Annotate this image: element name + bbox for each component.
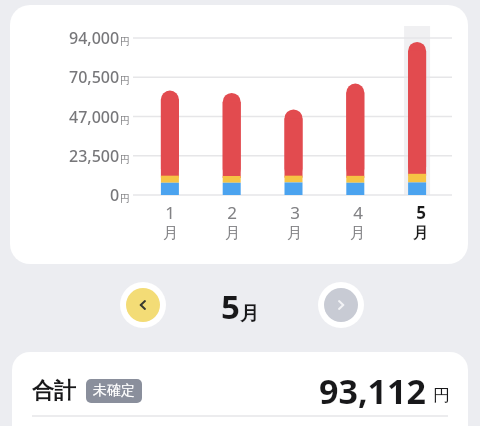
staticText: 月 — [287, 224, 302, 243]
staticText: 月 — [350, 224, 365, 243]
staticText: 0 — [110, 184, 120, 206]
staticText: 2 — [227, 201, 237, 224]
staticText: 1 — [165, 201, 175, 224]
staticText: 月 — [413, 224, 428, 243]
button[interactable]: 合計 — [12, 352, 468, 426]
staticText: 未確定 — [93, 382, 135, 400]
staticText: 70,500 — [69, 66, 120, 88]
staticText: 47,000 — [69, 106, 120, 128]
staticText: 5 — [416, 201, 426, 224]
staticText: 円 — [120, 153, 130, 166]
staticText: 合計 — [32, 377, 76, 405]
staticText: 円 — [120, 74, 130, 87]
button[interactable]: 94,000 — [10, 5, 468, 264]
staticText: 94,000 — [69, 27, 120, 49]
staticText: 3 — [290, 201, 300, 224]
staticText: 4 — [353, 201, 363, 224]
staticText: 月 — [240, 302, 259, 326]
staticText: 月 — [225, 224, 240, 243]
staticText: 93,112 — [319, 368, 426, 414]
staticText: 円 — [120, 114, 130, 127]
staticText: 円 — [120, 35, 130, 48]
staticText: 円 — [433, 385, 450, 406]
staticText: 円 — [120, 192, 130, 205]
staticText: 23,500 — [69, 145, 120, 167]
button[interactable]: 次の月 — [318, 282, 364, 328]
staticText: 5 — [221, 284, 240, 329]
staticText: 月 — [163, 224, 178, 243]
button[interactable]: 前の月 — [120, 282, 166, 328]
